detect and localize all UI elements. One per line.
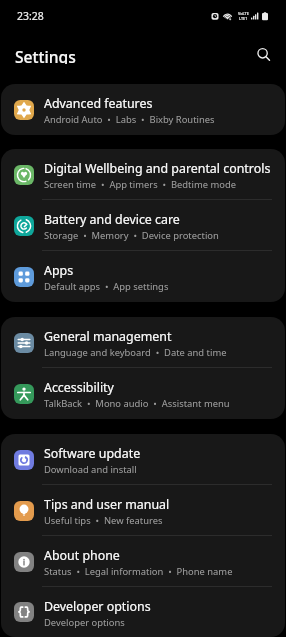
button[interactable]: About phone xyxy=(1,536,285,587)
staticText: General management xyxy=(44,328,172,345)
staticText: Advanced features xyxy=(44,95,153,112)
staticText: Settings xyxy=(15,46,76,64)
button[interactable]: Software update xyxy=(1,434,285,485)
button[interactable]: Digital Wellbeing and parental controls xyxy=(1,149,285,200)
button[interactable]: Apps xyxy=(1,251,285,302)
staticText: Developer options xyxy=(44,616,125,629)
staticText: TalkBack • Mono audio • Assistant menu xyxy=(44,397,230,410)
staticText: Software update xyxy=(44,445,141,462)
button[interactable]: Advanced features xyxy=(1,84,285,135)
button[interactable]: Accessibility xyxy=(1,368,285,419)
staticText: Status • Legal information • Phone name xyxy=(44,565,233,578)
staticText: Default apps • App settings xyxy=(44,280,169,293)
button[interactable]: General management xyxy=(1,317,285,368)
staticText: LTE1 xyxy=(239,16,248,21)
staticText: Digital Wellbeing and parental controls xyxy=(44,160,271,177)
staticText: Battery and device care xyxy=(44,211,180,228)
button[interactable]: Developer options xyxy=(1,587,285,637)
button[interactable]: Search xyxy=(249,44,277,64)
staticText: VoLTE xyxy=(238,11,249,16)
button[interactable]: Tips and user manual xyxy=(1,485,285,536)
staticText: Download and install xyxy=(44,463,137,476)
button[interactable]: Battery and device care xyxy=(1,200,285,251)
staticText: Accessibility xyxy=(44,379,114,396)
staticText: 23:28 xyxy=(17,9,44,23)
staticText: About phone xyxy=(44,547,120,564)
staticText: Apps xyxy=(44,262,74,279)
staticText: Language and keyboard • Date and time xyxy=(44,346,227,359)
staticText: Android Auto • Labs • Bixby Routines xyxy=(44,113,215,126)
staticText: Storage • Memory • Device protection xyxy=(44,229,219,242)
staticText: Developer options xyxy=(44,598,151,615)
staticText: Useful tips • New features xyxy=(44,514,163,527)
staticText: Tips and user manual xyxy=(44,496,170,513)
staticText: Screen time • App timers • Bedtime mode xyxy=(44,178,236,191)
